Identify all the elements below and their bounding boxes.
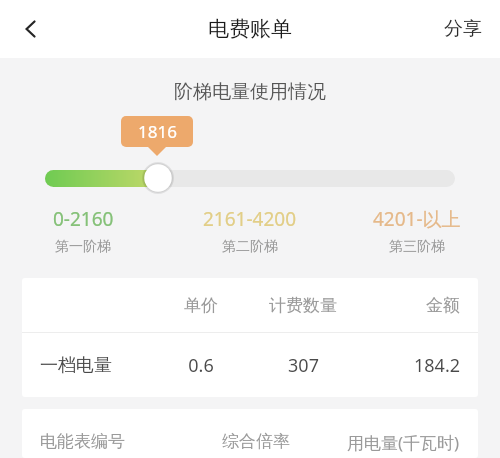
staticText: 307 xyxy=(288,353,319,378)
staticText: 1816 xyxy=(138,120,177,143)
button[interactable]: 单价 xyxy=(22,278,478,332)
staticText: 用电量(千瓦时) xyxy=(347,431,460,454)
button[interactable]: Back xyxy=(0,0,62,58)
staticText: 综合倍率 xyxy=(222,431,290,452)
staticText: 第一阶梯 xyxy=(55,238,111,256)
staticText: 0.6 xyxy=(188,353,214,378)
staticText: 金额 xyxy=(426,295,460,316)
staticText: 4201-以上 xyxy=(373,206,461,232)
button[interactable]: 2161-4200 xyxy=(166,206,333,256)
button[interactable]: 4201-以上 xyxy=(333,206,500,256)
staticText: 电能表编号 xyxy=(40,431,125,452)
staticText: 第二阶梯 xyxy=(222,238,278,256)
button[interactable]: 分享 xyxy=(426,0,500,58)
staticText: 一档电量 xyxy=(40,354,112,377)
staticText: 分享 xyxy=(444,17,482,41)
staticText: 单价 xyxy=(184,295,218,316)
staticText: 2161-4200 xyxy=(203,206,297,232)
staticText: 阶梯电量使用情况 xyxy=(174,80,326,104)
button[interactable]: 0-2160 xyxy=(0,206,166,256)
button[interactable]: 一档电量 xyxy=(22,333,478,397)
staticText: 0-2160 xyxy=(53,206,114,232)
staticText: 第三阶梯 xyxy=(389,238,445,256)
staticText: 电费账单 xyxy=(208,16,292,42)
staticText: 计费数量 xyxy=(269,295,337,316)
staticText: 184.2 xyxy=(413,353,460,378)
button[interactable]: 电能表编号 xyxy=(22,409,478,458)
button[interactable]: Usage slider xyxy=(138,162,178,194)
